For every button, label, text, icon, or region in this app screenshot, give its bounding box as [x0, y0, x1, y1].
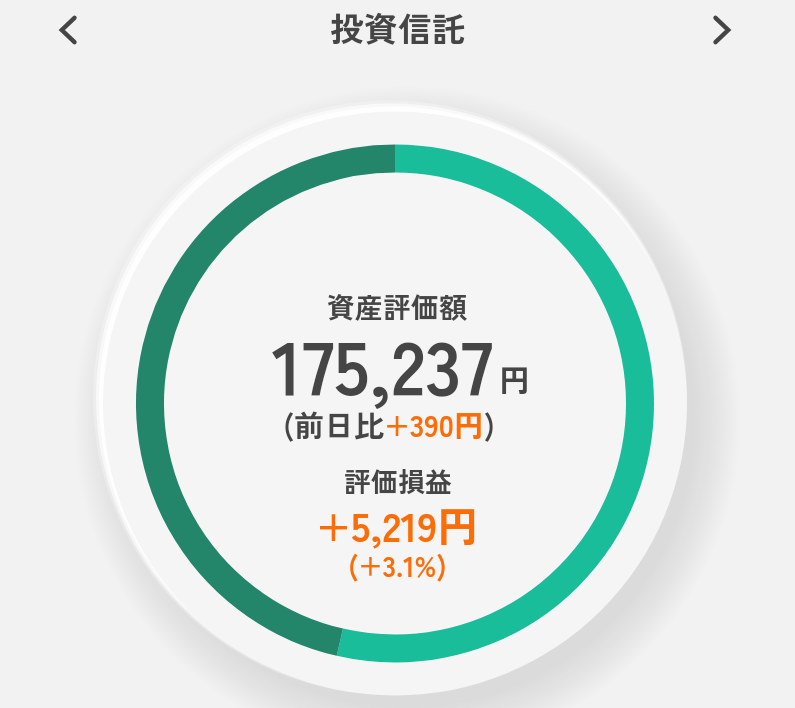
staticText: (前日比+390円) [283, 402, 496, 445]
staticText: 投資信託 [330, 3, 466, 52]
button[interactable] [699, 8, 743, 52]
staticText: 円 [499, 356, 530, 401]
button[interactable] [47, 8, 91, 52]
staticText: 評価損益 [344, 461, 452, 500]
staticText: 資産評価額 [327, 286, 468, 327]
staticText: (+3.1%) [348, 545, 447, 586]
staticText: +5,219円 [316, 494, 479, 553]
staticText: 175,237 [272, 309, 493, 418]
